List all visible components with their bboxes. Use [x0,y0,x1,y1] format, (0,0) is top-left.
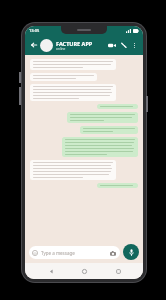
button[interactable] [30,59,116,70]
button[interactable]: Back [29,40,39,50]
button[interactable] [97,183,138,188]
button[interactable]: Home [76,263,92,279]
button[interactable]: Camera [109,249,117,257]
button[interactable] [67,112,138,123]
button[interactable] [30,73,97,81]
button[interactable]: Voice call [118,39,130,51]
button[interactable]: More options [130,41,139,50]
staticText: 13:05 [29,28,40,33]
button[interactable]: Profile photo [40,39,53,52]
staticText: Type a message [41,250,109,256]
button[interactable] [62,137,138,157]
button[interactable] [97,104,138,109]
button[interactable]: Type a message [29,246,120,259]
button[interactable]: FACTURE APP [56,40,106,51]
staticText: FACTURE APP [56,40,93,47]
button[interactable]: Record voice message [123,244,139,260]
button[interactable]: Recent apps [110,263,126,279]
button[interactable]: Back [43,263,59,279]
staticText: online [56,47,66,51]
button[interactable]: Video call [106,39,118,51]
button[interactable] [30,160,116,180]
button[interactable] [80,126,138,134]
button[interactable] [30,84,116,101]
